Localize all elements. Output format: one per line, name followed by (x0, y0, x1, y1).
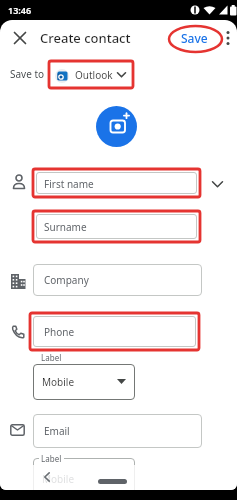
button[interactable]: Save (176, 28, 212, 48)
staticText: First name (44, 177, 94, 191)
staticText: Mobile (42, 472, 75, 486)
staticText: Phone (44, 325, 75, 339)
button[interactable]: Mobile (33, 458, 135, 490)
button[interactable]: Company (33, 264, 202, 296)
button[interactable]: Outlook (50, 62, 133, 88)
button[interactable]: First name (33, 170, 200, 197)
staticText: Save to (10, 67, 45, 81)
staticText: Label (39, 453, 64, 464)
button[interactable] (98, 479, 127, 484)
staticText: Outlook (75, 68, 113, 82)
staticText: Label (39, 352, 64, 363)
button[interactable]: Mobile (33, 364, 135, 400)
button[interactable] (220, 26, 236, 50)
staticText: Email (44, 424, 70, 438)
staticText: Company (44, 273, 89, 287)
staticText: Create contact (40, 29, 131, 47)
button[interactable] (96, 106, 137, 147)
button[interactable] (8, 26, 32, 50)
button[interactable]: Surname (33, 212, 200, 242)
staticText: 13:46 (8, 4, 32, 16)
staticText: Mobile (42, 375, 75, 389)
button[interactable]: Phone (30, 314, 199, 350)
staticText: Surname (44, 220, 87, 234)
button[interactable] (39, 469, 55, 485)
button[interactable]: Email (33, 414, 202, 448)
staticText: Save (181, 30, 208, 46)
button[interactable] (206, 175, 228, 193)
